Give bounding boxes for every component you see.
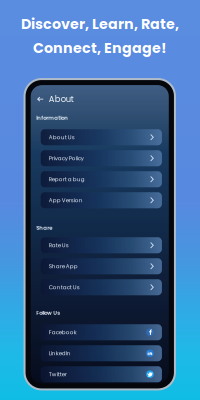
- staticText: Twitter: [49, 370, 67, 378]
- staticText: Report a bug: [49, 175, 85, 183]
- button[interactable]: About Us: [41, 129, 162, 145]
- staticText: Discover, Learn, Rate,: [21, 14, 179, 34]
- button[interactable]: Rate Us: [41, 237, 162, 253]
- button[interactable]: Report a bug: [41, 171, 162, 187]
- staticText: Rate Us: [49, 241, 69, 249]
- button[interactable]: Privacy Policy: [41, 150, 162, 166]
- staticText: Follow Us: [36, 309, 60, 317]
- staticText: Information: [36, 114, 68, 122]
- staticText: App Version: [49, 196, 83, 204]
- button[interactable]: Facebook: [41, 324, 162, 340]
- button[interactable]: App Version: [41, 192, 162, 208]
- staticText: Connect, Engage!: [33, 38, 167, 58]
- staticText: Contact Us: [49, 283, 80, 291]
- button[interactable]: LinkedIn: [41, 345, 162, 361]
- staticText: Share App: [49, 262, 78, 270]
- button[interactable]: Twitter: [41, 366, 162, 382]
- staticText: Facebook: [49, 328, 77, 336]
- staticText: About Us: [49, 133, 75, 141]
- staticText: LinkedIn: [49, 349, 71, 357]
- staticText: About: [49, 93, 74, 105]
- button[interactable]: Share App: [41, 258, 162, 274]
- button[interactable]: Back: [37, 95, 44, 104]
- button[interactable]: Contact Us: [41, 279, 162, 295]
- staticText: Privacy Policy: [49, 154, 84, 162]
- staticText: Share: [36, 224, 52, 232]
